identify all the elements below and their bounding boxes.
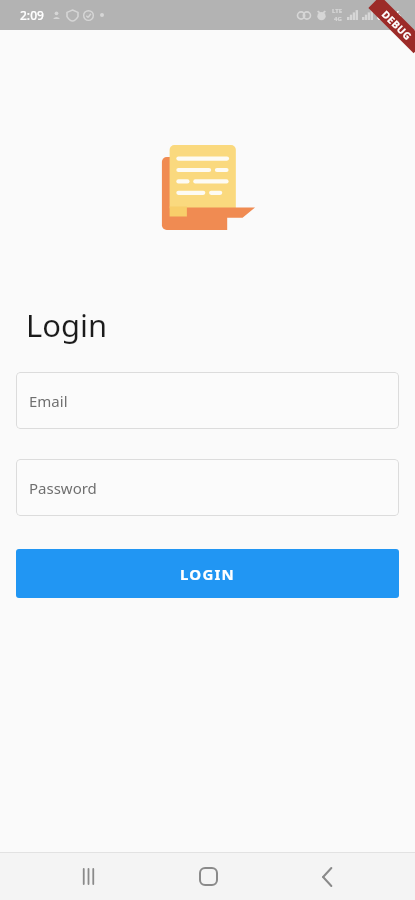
staticText: 2:09 (20, 7, 44, 23)
staticText: Login (26, 304, 108, 346)
button[interactable]: LOGIN (16, 549, 399, 598)
staticText: 4G (334, 15, 342, 23)
button[interactable]: Recents (56, 853, 120, 900)
staticText: LOGIN (180, 564, 235, 584)
button[interactable]: Password (16, 459, 399, 516)
staticText: Password (29, 478, 97, 498)
button[interactable]: Home (176, 853, 240, 900)
staticText: DEBUG (379, 7, 415, 43)
staticText: 87% (377, 7, 401, 23)
staticText: LTE (332, 7, 343, 15)
button[interactable]: Back (295, 853, 359, 900)
staticText: Email (29, 391, 68, 411)
button[interactable]: Email (16, 372, 399, 429)
